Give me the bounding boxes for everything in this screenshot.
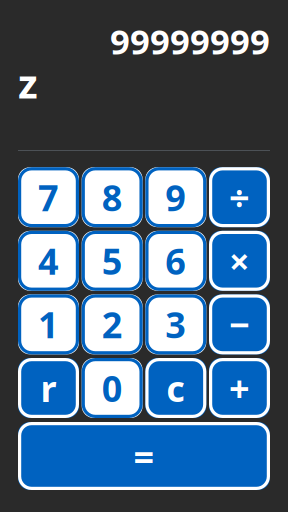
button[interactable]: 8 [82,167,143,227]
button[interactable]: 1 [18,294,79,354]
staticText: 9 [165,173,186,221]
staticText: 2 [102,300,123,348]
staticText: 4 [38,237,59,285]
button[interactable]: r [18,358,79,418]
button[interactable]: = [18,422,270,490]
staticText: z [18,56,38,109]
button[interactable]: − [209,294,270,354]
button[interactable]: ÷ [209,167,270,227]
staticText: r [40,364,56,412]
button[interactable]: × [209,231,270,291]
button[interactable]: 0 [82,358,143,418]
staticText: × [229,237,250,285]
button[interactable]: 6 [145,231,206,291]
button[interactable]: 2 [82,294,143,354]
button[interactable]: 7 [18,167,79,227]
button[interactable]: 3 [145,294,206,354]
button[interactable]: c [145,358,206,418]
staticText: 3 [165,300,186,348]
staticText: 0 [102,364,123,412]
staticText: 6 [165,237,186,285]
staticText: + [229,364,250,412]
staticText: = [133,432,154,480]
staticText: 5 [102,237,123,285]
staticText: 1 [38,300,59,348]
staticText: 8 [102,173,123,221]
button[interactable]: + [209,358,270,418]
button[interactable]: 5 [82,231,143,291]
button[interactable]: 9 [145,167,206,227]
staticText: ÷ [229,173,250,221]
staticText: c [166,364,185,412]
staticText: 99999999 [110,18,270,64]
button[interactable]: 4 [18,231,79,291]
staticText: − [229,300,250,348]
staticText: 7 [38,173,59,221]
